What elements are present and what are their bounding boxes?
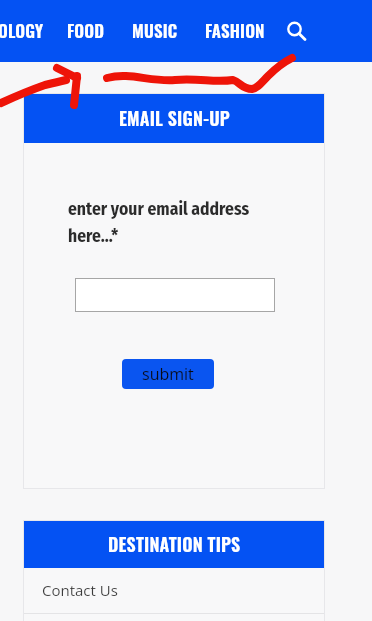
button[interactable]: submit — [122, 359, 214, 389]
staticText: submit — [142, 363, 194, 385]
button[interactable]: Contact Us — [23, 568, 325, 612]
button[interactable]: FASHION — [205, 18, 265, 43]
button[interactable]: MUSIC — [132, 18, 178, 43]
staticText: enter your email address here...* — [68, 199, 250, 247]
button[interactable]: OLOGY — [0, 18, 44, 43]
staticText: EMAIL SIGN-UP — [119, 105, 230, 132]
staticText: DESTINATION TIPS — [108, 531, 241, 558]
button[interactable] — [75, 278, 275, 312]
staticText: Contact Us — [42, 580, 118, 600]
button[interactable] — [285, 20, 309, 44]
button[interactable]: FOOD — [67, 18, 105, 43]
